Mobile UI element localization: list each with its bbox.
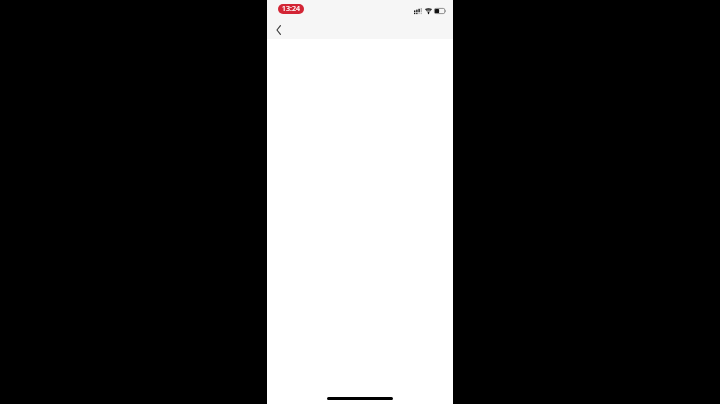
button[interactable]: 13:24 [278, 4, 304, 14]
button[interactable]: Back [270, 21, 287, 38]
staticText: 13:24 [282, 4, 300, 14]
